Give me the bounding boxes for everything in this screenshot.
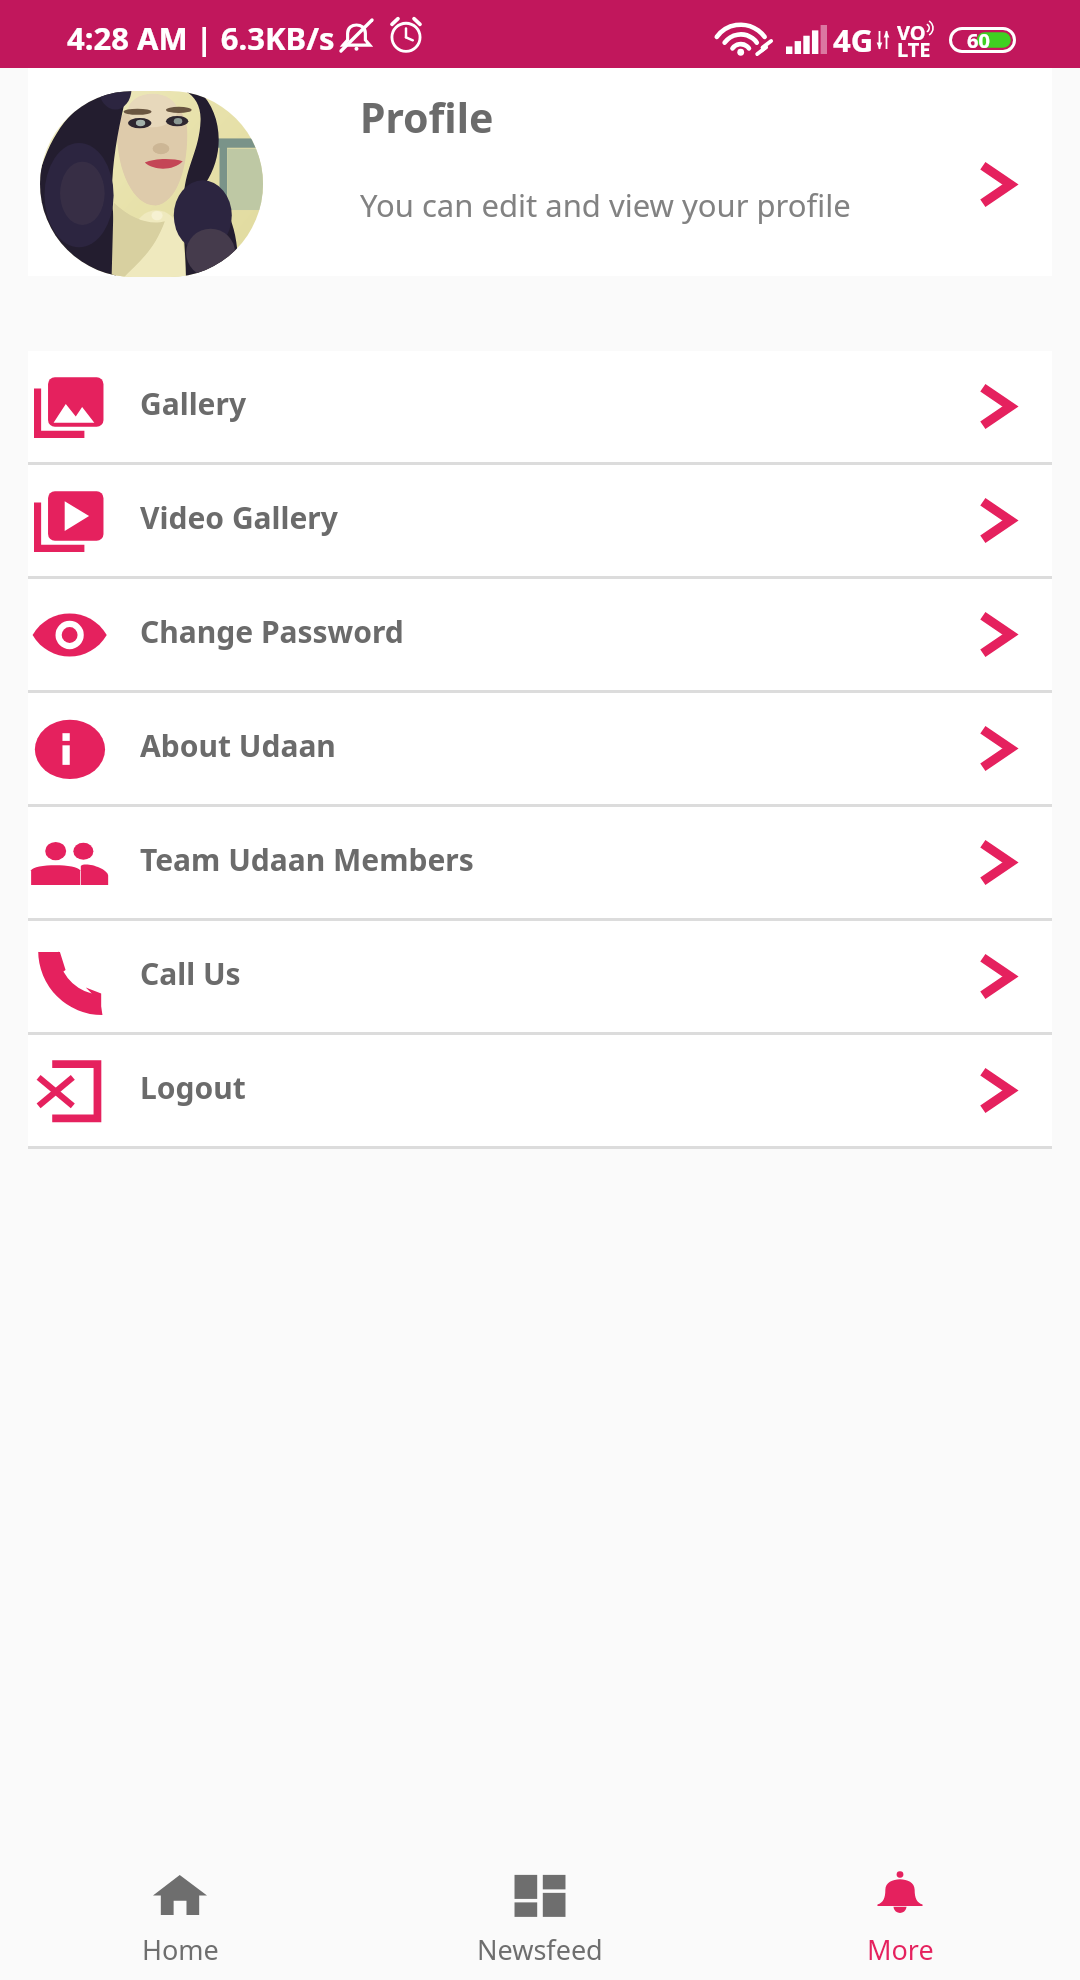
staticText: Call Us bbox=[140, 953, 241, 994]
staticText: LTE bbox=[897, 36, 931, 63]
staticText: Team Udaan Members bbox=[140, 839, 474, 880]
button[interactable]: Logout bbox=[28, 1035, 1052, 1146]
staticText: Gallery bbox=[140, 383, 247, 424]
staticText: Video Gallery bbox=[140, 497, 338, 538]
button[interactable]: Team Udaan Members bbox=[28, 807, 1052, 918]
staticText: About Udaan bbox=[140, 725, 336, 766]
button[interactable]: About Udaan bbox=[28, 693, 1052, 804]
staticText: Change Password bbox=[140, 611, 404, 652]
staticText: 60 bbox=[967, 27, 990, 53]
staticText: 4:28 AM | 6.3KB/s bbox=[67, 17, 335, 59]
staticText: 4G bbox=[833, 19, 874, 61]
button[interactable]: Gallery bbox=[28, 351, 1052, 462]
staticText: VO bbox=[897, 19, 926, 46]
button[interactable]: More bbox=[720, 1856, 1080, 1980]
button[interactable]: Home bbox=[0, 1856, 360, 1980]
staticText: Logout bbox=[140, 1067, 246, 1108]
staticText: You can edit and view your profile bbox=[360, 184, 851, 226]
staticText: Home bbox=[142, 1931, 219, 1968]
staticText: Newsfeed bbox=[477, 1931, 603, 1968]
button[interactable]: Newsfeed bbox=[360, 1856, 720, 1980]
button[interactable]: Video Gallery bbox=[28, 465, 1052, 576]
button[interactable]: Call Us bbox=[28, 921, 1052, 1032]
button[interactable]: Change Password bbox=[28, 579, 1052, 690]
button[interactable]: Profile bbox=[28, 68, 1052, 276]
staticText: Profile bbox=[360, 89, 494, 145]
staticText: More bbox=[867, 1931, 934, 1968]
